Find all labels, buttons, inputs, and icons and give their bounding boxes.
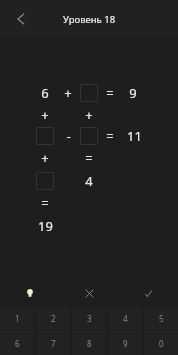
button[interactable]: 4: [108, 306, 142, 330]
staticText: -: [66, 127, 71, 145]
staticText: 4: [85, 172, 93, 190]
button[interactable]: 1: [0, 306, 34, 330]
staticText: +: [41, 106, 49, 124]
button[interactable]: Clear: [60, 277, 119, 309]
button[interactable]: Check: [119, 277, 178, 309]
staticText: 6: [15, 338, 20, 349]
staticText: +: [41, 149, 49, 167]
staticText: =: [106, 127, 114, 145]
staticText: 8: [87, 338, 92, 349]
staticText: 3: [87, 313, 92, 324]
staticText: +: [85, 106, 93, 124]
staticText: 11: [127, 127, 142, 145]
button[interactable]: 2: [36, 306, 70, 330]
staticText: +: [64, 84, 72, 102]
staticText: =: [106, 84, 114, 102]
staticText: 4: [123, 313, 128, 324]
button[interactable]: 5: [144, 306, 178, 330]
staticText: 9: [123, 338, 128, 349]
button[interactable]: 9: [108, 331, 142, 355]
button[interactable]: Empty cell: [80, 84, 98, 102]
staticText: =: [41, 194, 49, 212]
button[interactable]: Back: [6, 4, 36, 34]
staticText: =: [85, 149, 93, 167]
staticText: 0: [159, 338, 164, 349]
button[interactable]: Empty cell: [80, 127, 98, 145]
button[interactable]: Empty cell: [36, 172, 54, 190]
staticText: 1: [15, 313, 20, 324]
button[interactable]: 6: [0, 331, 34, 355]
staticText: 7: [51, 338, 56, 349]
staticText: 2: [51, 313, 56, 324]
staticText: Уровень 18: [63, 13, 116, 26]
button[interactable]: 0: [144, 331, 178, 355]
button[interactable]: 7: [36, 331, 70, 355]
button[interactable]: 8: [72, 331, 106, 355]
button[interactable]: 3: [72, 306, 106, 330]
staticText: 19: [38, 217, 53, 235]
button[interactable]: Empty cell: [36, 127, 54, 145]
staticText: 5: [159, 313, 164, 324]
staticText: 9: [129, 84, 137, 102]
button[interactable]: Hint: [0, 277, 60, 309]
staticText: 6: [41, 84, 49, 102]
